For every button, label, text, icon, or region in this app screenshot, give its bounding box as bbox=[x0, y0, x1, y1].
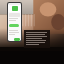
button[interactable]: Message bbox=[14, 38, 20, 41]
other: Hero photo bbox=[0, 0, 64, 47]
button[interactable]: App badge bbox=[7, 2, 22, 42]
button[interactable]: Primary action bbox=[9, 24, 19, 27]
button[interactable]: App badge bbox=[12, 6, 18, 11]
button[interactable] bbox=[24, 30, 50, 48]
